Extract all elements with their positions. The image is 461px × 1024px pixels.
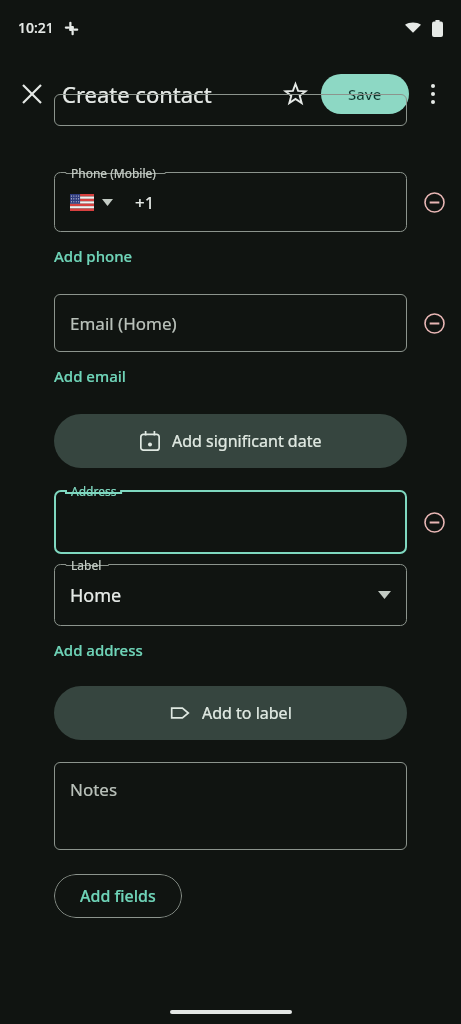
button[interactable]: Close xyxy=(10,72,54,116)
staticText: Phone (Mobile) xyxy=(71,165,156,181)
button[interactable]: Add to label xyxy=(54,686,407,740)
button[interactable]: Add address xyxy=(54,640,143,660)
button[interactable]: Email (Home) xyxy=(54,294,407,352)
button[interactable] xyxy=(54,94,407,126)
staticText: Add phone xyxy=(54,246,133,266)
staticText: 10:21 xyxy=(18,18,54,37)
button[interactable]: Add phone xyxy=(54,246,133,266)
button[interactable]: Add email xyxy=(54,366,126,386)
staticText: Save xyxy=(348,84,382,104)
staticText: Add fields xyxy=(80,885,156,907)
staticText: Home xyxy=(70,583,122,608)
staticText: Create contact xyxy=(62,79,212,109)
staticText: Add significant date xyxy=(172,430,322,452)
staticText: Address xyxy=(71,483,117,499)
staticText: Label xyxy=(71,557,102,573)
staticText: Add address xyxy=(54,640,143,660)
button[interactable]: Favorite xyxy=(273,72,317,116)
button[interactable]: Notes xyxy=(54,762,407,850)
button[interactable]: Add significant date xyxy=(54,414,407,468)
button[interactable]: Save xyxy=(321,74,409,114)
staticText: Add email xyxy=(54,366,126,386)
staticText: Add to label xyxy=(202,702,292,724)
button[interactable]: More options xyxy=(411,72,455,116)
button[interactable]: Remove field xyxy=(407,495,461,549)
button[interactable]: Remove field xyxy=(407,296,461,350)
button[interactable]: Add fields xyxy=(54,874,182,918)
staticText: +1 xyxy=(135,191,155,214)
staticText: Notes xyxy=(70,778,118,801)
button[interactable]: Remove field xyxy=(407,175,461,229)
staticText: Email (Home) xyxy=(70,312,177,335)
